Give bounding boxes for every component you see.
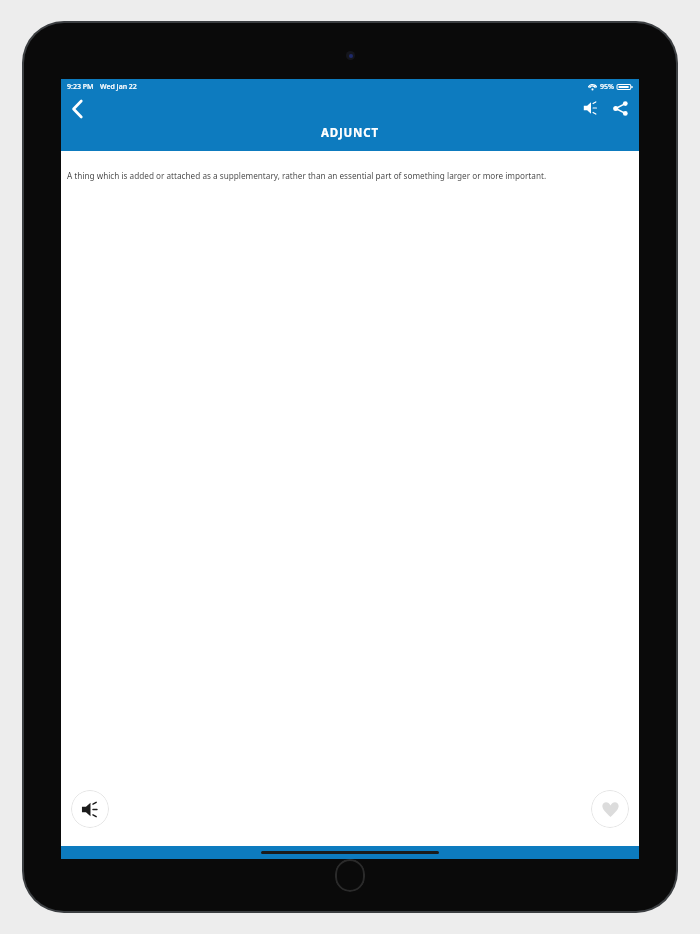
button[interactable]: Share (607, 95, 633, 121)
button[interactable]: Favorite (591, 790, 629, 828)
staticText: A thing which is added or attached as a … (67, 170, 547, 181)
button[interactable]: Back (63, 95, 91, 123)
staticText: Wed Jan 22 (100, 82, 137, 92)
staticText: 9:23 PM (67, 82, 94, 92)
button[interactable]: Pronounce (71, 790, 109, 828)
staticText: 95% (600, 82, 614, 92)
button[interactable]: Pronounce (578, 95, 604, 121)
staticText: ADJUNCT (321, 125, 379, 141)
